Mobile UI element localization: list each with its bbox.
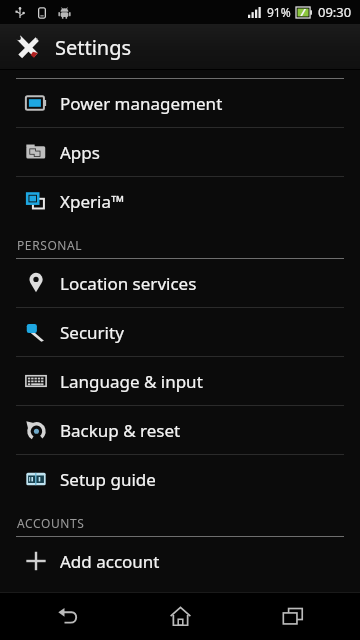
button[interactable]: Xperia™ — [0, 177, 360, 225]
staticText: 09:30 — [318, 3, 352, 21]
button[interactable]: Security — [0, 308, 360, 356]
button[interactable]: Apps — [0, 128, 360, 176]
staticText: Location services — [60, 272, 197, 295]
button[interactable]: Power management — [0, 79, 360, 127]
staticText: Setup guide — [60, 468, 156, 491]
staticText: 91% — [267, 4, 291, 20]
staticText: Xperia™ — [60, 190, 125, 213]
staticText: Add account — [60, 550, 160, 573]
staticText: Backup & reset — [60, 419, 181, 442]
button[interactable]: Setup guide — [0, 455, 360, 503]
button[interactable]: Recent apps — [248, 592, 338, 640]
button[interactable]: Home — [135, 592, 225, 640]
staticText: Settings — [55, 34, 132, 61]
staticText: PERSONAL — [17, 237, 83, 253]
button[interactable]: Language & input — [0, 357, 360, 405]
button[interactable]: Back — [23, 592, 113, 640]
staticText: Power management — [60, 92, 223, 115]
button[interactable]: Location services — [0, 259, 360, 307]
button[interactable]: Settings — [0, 24, 360, 70]
button[interactable]: Add account — [0, 537, 360, 585]
button[interactable]: Backup & reset — [0, 406, 360, 454]
staticText: ACCOUNTS — [17, 515, 85, 531]
staticText: Apps — [60, 141, 100, 164]
staticText: Security — [60, 321, 124, 344]
staticText: Language & input — [60, 370, 203, 393]
